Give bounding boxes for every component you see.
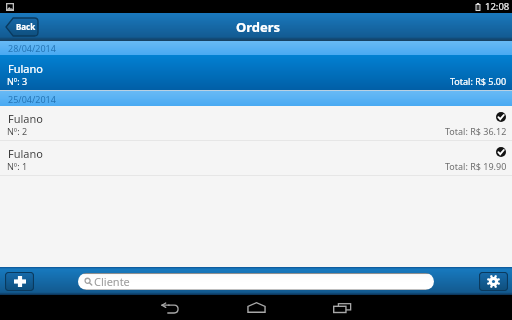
button[interactable]: Settings bbox=[479, 272, 508, 291]
staticText: 28/04/2014 bbox=[8, 42, 56, 54]
staticText: Cliente bbox=[94, 274, 130, 289]
button[interactable]: Fulano bbox=[0, 141, 512, 176]
staticText: Fulano bbox=[8, 61, 43, 76]
staticText: Total: R$ 5.00 bbox=[450, 75, 507, 87]
button[interactable]: Back bbox=[5, 17, 39, 37]
staticText: Fulano bbox=[8, 146, 43, 161]
button[interactable]: Fulano bbox=[0, 106, 512, 141]
button[interactable]: Home bbox=[213, 295, 299, 320]
staticText: Nº: 3 bbox=[7, 75, 28, 87]
staticText: Fulano bbox=[8, 111, 43, 126]
staticText: Total: R$ 19.90 bbox=[445, 160, 507, 172]
staticText: 25/04/2014 bbox=[8, 93, 56, 105]
button[interactable]: Add bbox=[5, 272, 34, 291]
staticText: Back bbox=[16, 21, 36, 32]
button[interactable]: Recents bbox=[299, 295, 385, 320]
staticText: 12:08 bbox=[485, 0, 510, 13]
button[interactable]: Back bbox=[127, 295, 213, 320]
staticText: Nº: 2 bbox=[7, 125, 28, 137]
button[interactable]: Fulano bbox=[0, 55, 512, 91]
staticText: Total: R$ 36.12 bbox=[445, 125, 507, 137]
staticText: Orders bbox=[236, 18, 281, 36]
button[interactable]: Cliente bbox=[78, 273, 434, 290]
staticText: Nº: 1 bbox=[7, 160, 28, 172]
